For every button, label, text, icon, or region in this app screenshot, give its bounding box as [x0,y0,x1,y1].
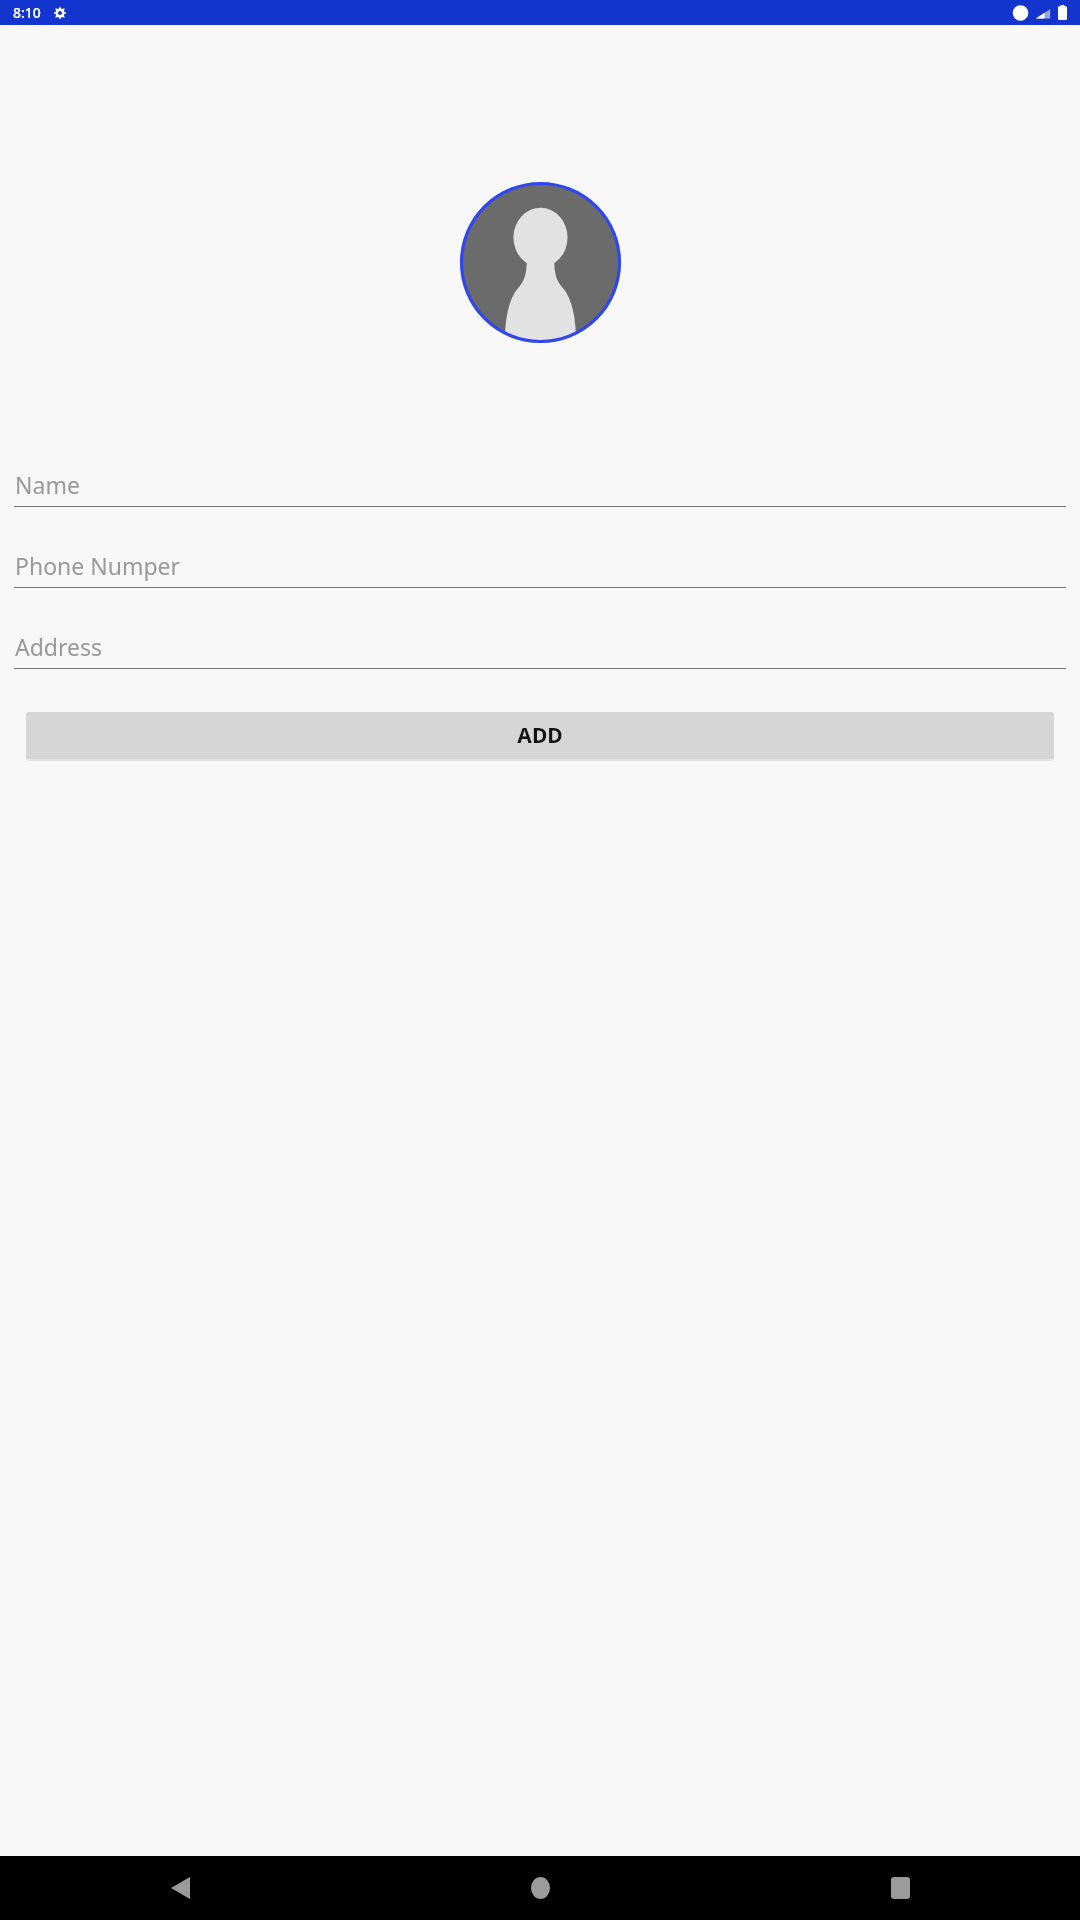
button[interactable]: Recent apps [720,1856,1080,1920]
button[interactable]: Phone Numper [14,550,1066,588]
staticText: 8:10 [13,3,41,22]
staticText: ADD [517,721,563,750]
button[interactable]: Address [14,631,1066,669]
button[interactable]: Name [14,469,1066,507]
button[interactable]: Back [0,1856,360,1920]
staticText: Address [15,631,103,662]
button[interactable]: Home [360,1856,720,1920]
staticText: Phone Numper [15,550,181,581]
staticText: Name [15,469,80,500]
button[interactable]: ADD [26,712,1054,759]
